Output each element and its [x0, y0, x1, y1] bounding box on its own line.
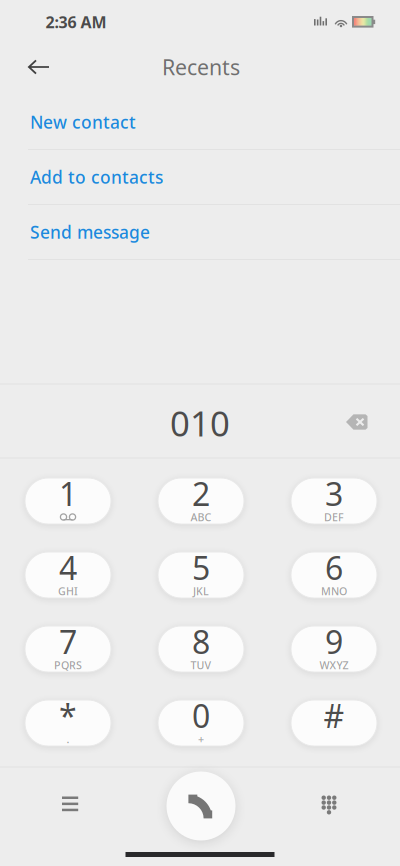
staticText: 6	[325, 546, 343, 589]
button[interactable]: 9	[291, 626, 377, 672]
staticText: 2:36 AM	[45, 11, 106, 33]
button[interactable]: Keypad	[301, 777, 357, 833]
staticText: 010	[170, 400, 230, 446]
button[interactable]: 3	[291, 478, 377, 524]
button[interactable]: *	[25, 700, 111, 746]
button[interactable]: Send message	[0, 205, 400, 260]
staticText: 7	[59, 620, 77, 663]
staticText: 3	[325, 472, 343, 515]
staticText: #	[323, 694, 344, 737]
staticText: 5	[192, 546, 210, 589]
staticText: .	[66, 732, 69, 746]
staticText: 4	[59, 546, 77, 589]
staticText: JKL	[193, 584, 209, 598]
staticText: DEF	[324, 510, 344, 524]
button[interactable]: 0	[158, 700, 244, 746]
button[interactable]: 8	[158, 626, 244, 672]
staticText: Add to contacts	[30, 165, 163, 188]
button[interactable]: Delete	[333, 400, 381, 444]
staticText: *	[59, 694, 77, 737]
staticText: +	[198, 732, 204, 746]
staticText: New contact	[30, 110, 136, 133]
staticText: MNO	[321, 584, 347, 598]
staticText: WXYZ	[319, 658, 348, 672]
staticText: ABC	[190, 510, 211, 524]
staticText: Send message	[30, 220, 150, 243]
button[interactable]: 1	[25, 478, 111, 524]
staticText: PQRS	[54, 658, 82, 672]
button[interactable]: Back	[15, 43, 63, 91]
button[interactable]: Add to contacts	[0, 150, 400, 205]
button[interactable]: Call	[164, 769, 238, 843]
button[interactable]: 2	[158, 478, 244, 524]
staticText: 8	[192, 620, 210, 663]
button[interactable]: 5	[158, 552, 244, 598]
button[interactable]: Call history	[42, 776, 98, 832]
staticText: 2	[192, 472, 210, 515]
button[interactable]: New contact	[0, 95, 400, 150]
button[interactable]: 6	[291, 552, 377, 598]
staticText: GHI	[58, 584, 78, 598]
staticText: 0	[192, 694, 210, 737]
staticText: Recents	[162, 53, 240, 81]
button[interactable]: 7	[25, 626, 111, 672]
staticText: 1	[59, 472, 77, 515]
button[interactable]: 4	[25, 552, 111, 598]
button[interactable]: #	[291, 700, 377, 746]
staticText: 9	[325, 620, 343, 663]
staticText: TUV	[190, 658, 211, 672]
